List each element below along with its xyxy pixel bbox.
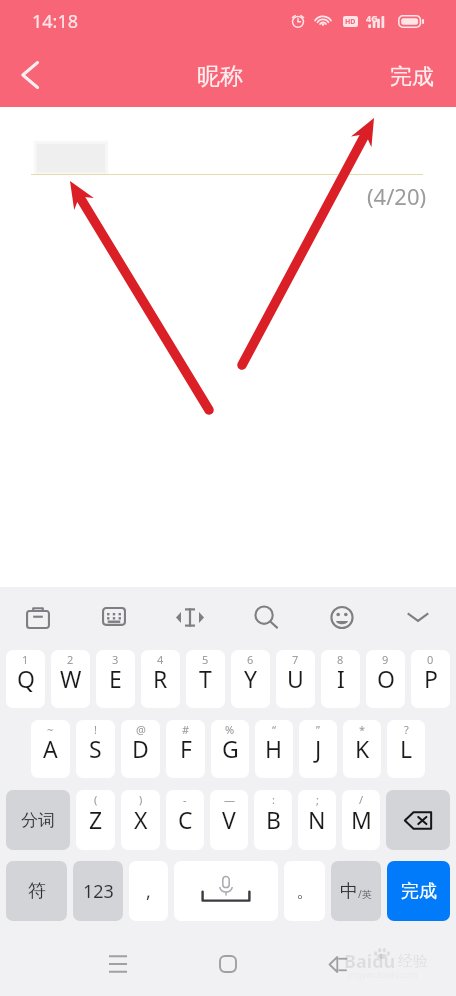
button[interactable]: 中 xyxy=(331,861,381,921)
staticText: 9 xyxy=(382,652,389,667)
button[interactable]: Recents xyxy=(94,940,142,988)
button[interactable]: 符 xyxy=(6,861,67,921)
staticText: / xyxy=(359,792,364,807)
button[interactable]: Space, voice input xyxy=(174,861,278,921)
button[interactable]: ” xyxy=(299,720,337,778)
button[interactable]: / xyxy=(342,790,380,850)
staticText: 经验 xyxy=(398,952,428,971)
staticText: % xyxy=(225,722,235,737)
staticText: @ xyxy=(136,722,146,737)
button[interactable]: Keyboard layout xyxy=(76,587,152,638)
staticText: Y xyxy=(244,663,258,694)
button[interactable]: ~ xyxy=(31,720,70,778)
staticText: 完成 xyxy=(390,63,434,91)
staticText: K xyxy=(355,733,370,764)
button[interactable]: Home xyxy=(204,940,252,988)
staticText: - xyxy=(183,792,187,807)
staticText: B xyxy=(266,804,281,835)
staticText: Baidu xyxy=(344,949,396,974)
button[interactable]: ! xyxy=(76,720,115,778)
staticText: P xyxy=(424,663,438,694)
button[interactable]: ) xyxy=(121,790,160,850)
button[interactable]: 0 xyxy=(411,650,450,708)
button[interactable]: 6 xyxy=(231,650,270,708)
button[interactable]: 123 xyxy=(73,861,123,921)
button[interactable]: 分词 xyxy=(6,790,70,850)
staticText: N xyxy=(308,804,326,835)
staticText: E xyxy=(109,663,122,694)
button[interactable]: Move cursor xyxy=(152,587,228,638)
button[interactable]: ? xyxy=(387,720,425,778)
button[interactable] xyxy=(31,174,423,175)
button[interactable]: 完成 xyxy=(370,46,456,104)
button[interactable]: @ xyxy=(121,720,160,778)
button[interactable]: - xyxy=(166,790,204,850)
staticText: A xyxy=(43,733,58,764)
button[interactable]: — xyxy=(210,790,248,850)
staticText: ) xyxy=(139,792,143,807)
staticText: — xyxy=(224,792,235,807)
button[interactable]: 8 xyxy=(321,650,360,708)
button[interactable]: Backspace xyxy=(386,790,450,850)
button[interactable]: Search xyxy=(228,587,304,638)
staticText: 2 xyxy=(67,652,74,667)
button[interactable]: , xyxy=(129,861,168,921)
button[interactable]: 完成 xyxy=(387,861,450,921)
staticText: ! xyxy=(94,722,97,737)
button[interactable]: # xyxy=(166,720,205,778)
staticText: X xyxy=(134,804,148,835)
staticText: 6 xyxy=(247,652,254,667)
button[interactable]: Back xyxy=(314,940,362,988)
staticText: ? xyxy=(404,722,409,737)
staticText: : xyxy=(272,792,275,807)
staticText: U xyxy=(287,663,304,694)
staticText: 1 xyxy=(22,652,29,667)
staticText: 8 xyxy=(337,652,344,667)
staticText: V xyxy=(222,804,236,835)
staticText: 。 xyxy=(296,880,314,903)
staticText: R xyxy=(153,663,168,694)
staticText: H xyxy=(265,733,283,764)
staticText: ( xyxy=(94,792,98,807)
button[interactable]: Emoji xyxy=(304,587,380,638)
staticText: ” xyxy=(316,722,320,737)
staticText: HD xyxy=(345,17,356,27)
staticText: /英 xyxy=(358,887,372,901)
button[interactable]: Back xyxy=(6,51,54,99)
staticText: Q xyxy=(17,663,35,694)
button[interactable]: 1 xyxy=(6,650,45,708)
button[interactable]: : xyxy=(254,790,292,850)
button[interactable]: 3 xyxy=(96,650,135,708)
button[interactable]: 7 xyxy=(276,650,315,708)
staticText: 分词 xyxy=(21,810,55,831)
staticText: 符 xyxy=(28,880,46,903)
button[interactable]: 。 xyxy=(284,861,325,921)
staticText: S xyxy=(89,733,102,764)
staticText: 14:18 xyxy=(32,9,79,34)
staticText: 4G xyxy=(366,12,378,24)
button[interactable]: “ xyxy=(255,720,293,778)
staticText: , xyxy=(146,879,151,904)
staticText: ; xyxy=(316,792,319,807)
staticText: 完成 xyxy=(401,880,437,903)
staticText: W xyxy=(60,663,82,694)
staticText: ~ xyxy=(47,722,54,737)
staticText: 4 xyxy=(157,652,164,667)
button[interactable]: 4 xyxy=(141,650,180,708)
staticText: 0 xyxy=(427,652,434,667)
button[interactable]: * xyxy=(343,720,381,778)
staticText: C xyxy=(178,804,193,835)
button[interactable]: ( xyxy=(76,790,115,850)
staticText: 7 xyxy=(292,652,299,667)
button[interactable]: Hide keyboard xyxy=(380,587,456,638)
button[interactable]: 2 xyxy=(51,650,90,708)
button[interactable]: Clipboard xyxy=(0,587,76,638)
button[interactable]: ; xyxy=(298,790,336,850)
button[interactable]: 9 xyxy=(366,650,405,708)
staticText: D xyxy=(132,733,149,764)
button[interactable]: % xyxy=(211,720,249,778)
staticText: # xyxy=(182,722,190,737)
staticText: L xyxy=(400,733,413,764)
button[interactable]: 5 xyxy=(186,650,225,708)
